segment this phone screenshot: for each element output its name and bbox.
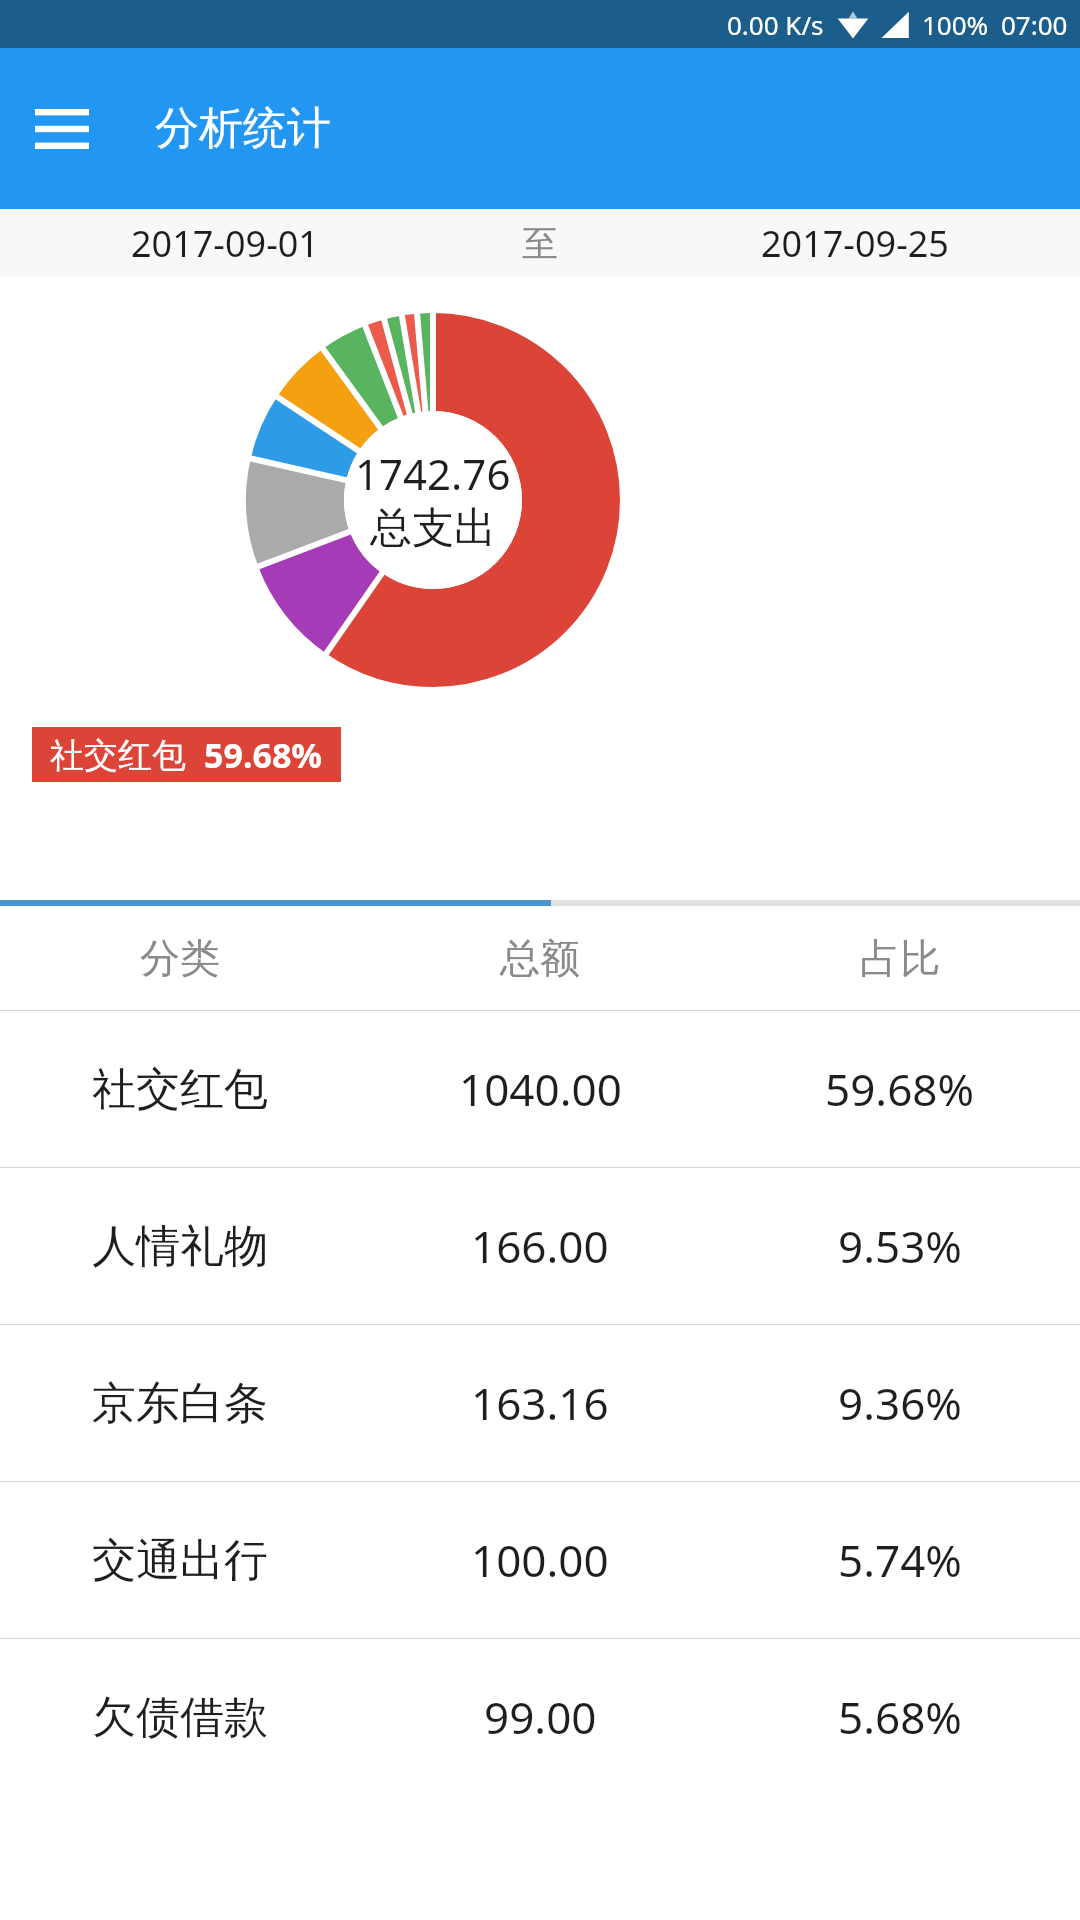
- button[interactable]: Menu: [20, 87, 104, 171]
- staticText: 京东白条: [92, 1376, 268, 1431]
- staticText: 分类: [140, 933, 220, 983]
- staticText: 人情礼物: [92, 1219, 268, 1274]
- staticText: 交通出行: [92, 1533, 268, 1588]
- button[interactable]: 人情礼物: [0, 1168, 1080, 1324]
- button[interactable]: 社交红包: [32, 727, 341, 782]
- staticText: 社交红包: [92, 1062, 268, 1117]
- staticText: 5.68%: [838, 1687, 962, 1747]
- staticText: 163.16: [471, 1373, 609, 1433]
- staticText: 占比: [860, 933, 940, 983]
- staticText: 1040.00: [459, 1059, 622, 1119]
- button[interactable]: 交通出行: [0, 1482, 1080, 1638]
- staticText: 5.74%: [838, 1530, 962, 1590]
- staticText: 100.00: [471, 1530, 609, 1590]
- staticText: 100%: [922, 7, 989, 42]
- staticText: 总支出: [370, 502, 496, 555]
- staticText: 59.68%: [204, 732, 323, 778]
- button[interactable]: 2017-09-25: [630, 209, 1080, 277]
- button[interactable]: 社交红包: [0, 1011, 1080, 1167]
- staticText: 社交红包: [50, 734, 186, 777]
- staticText: 分析统计: [155, 101, 331, 156]
- button[interactable]: 欠债借款: [0, 1639, 1080, 1795]
- staticText: 至: [522, 221, 558, 266]
- button[interactable]: 京东白条: [0, 1325, 1080, 1481]
- staticText: 2017-09-25: [761, 219, 949, 268]
- staticText: 166.00: [471, 1216, 609, 1276]
- staticText: 2017-09-01: [131, 219, 319, 268]
- staticText: 欠债借款: [92, 1690, 268, 1745]
- staticText: 9.53%: [838, 1216, 962, 1276]
- button[interactable]: 2017-09-01: [0, 209, 450, 277]
- staticText: 1742.76: [355, 445, 511, 502]
- staticText: 99.00: [484, 1687, 597, 1747]
- staticText: 0.00 K/s: [727, 7, 824, 42]
- staticText: 9.36%: [838, 1373, 962, 1433]
- staticText: 总额: [500, 933, 580, 983]
- staticText: 07:00: [1001, 7, 1068, 42]
- staticText: 59.68%: [825, 1059, 975, 1119]
